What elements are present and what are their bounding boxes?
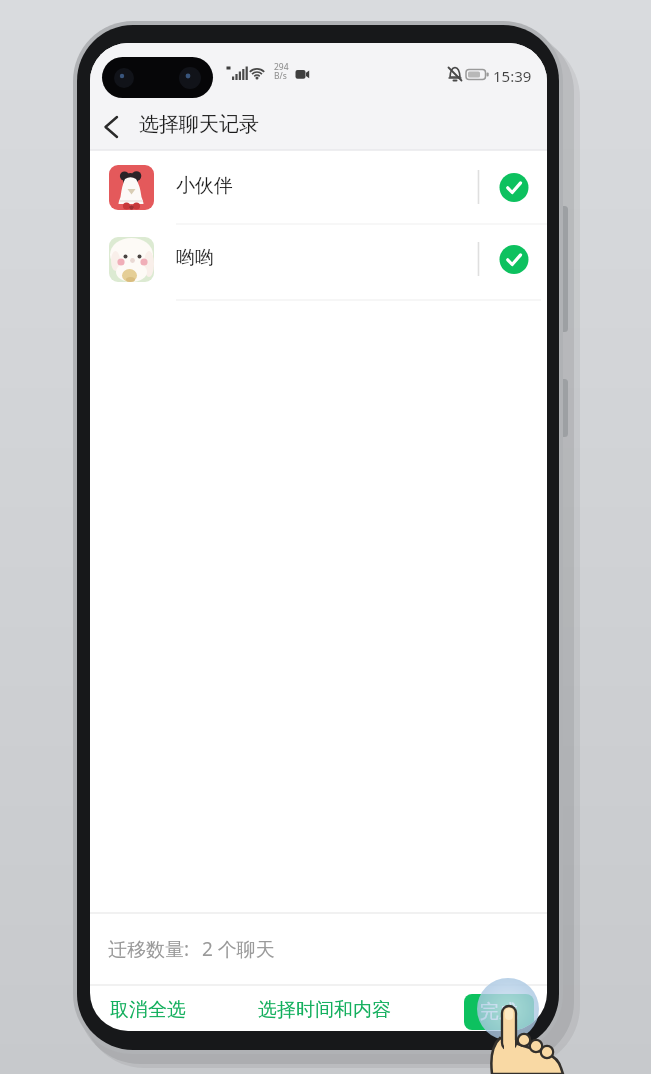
- staticText: 294: [274, 61, 289, 73]
- staticText: 完成: [480, 1000, 518, 1024]
- button[interactable]: 选择聊天记录: [139, 112, 259, 137]
- staticText: 取消全选: [110, 998, 186, 1022]
- button[interactable]: 取消全选: [110, 998, 186, 1022]
- staticText: 迁移数量:: [108, 936, 190, 962]
- button[interactable]: [90, 229, 547, 290]
- button[interactable]: [90, 107, 134, 147]
- staticText: 小伙伴: [176, 174, 233, 198]
- staticText: 2 个聊天: [202, 936, 275, 962]
- button[interactable]: 完成: [464, 994, 534, 1030]
- button[interactable]: 选择时间和内容: [258, 998, 391, 1022]
- staticText: 15:39: [493, 66, 532, 86]
- staticText: 哟哟: [176, 246, 214, 270]
- staticText: 选择聊天记录: [139, 112, 259, 137]
- staticText: 选择时间和内容: [258, 998, 391, 1022]
- button[interactable]: [90, 157, 547, 218]
- staticText: B/s: [274, 70, 287, 82]
